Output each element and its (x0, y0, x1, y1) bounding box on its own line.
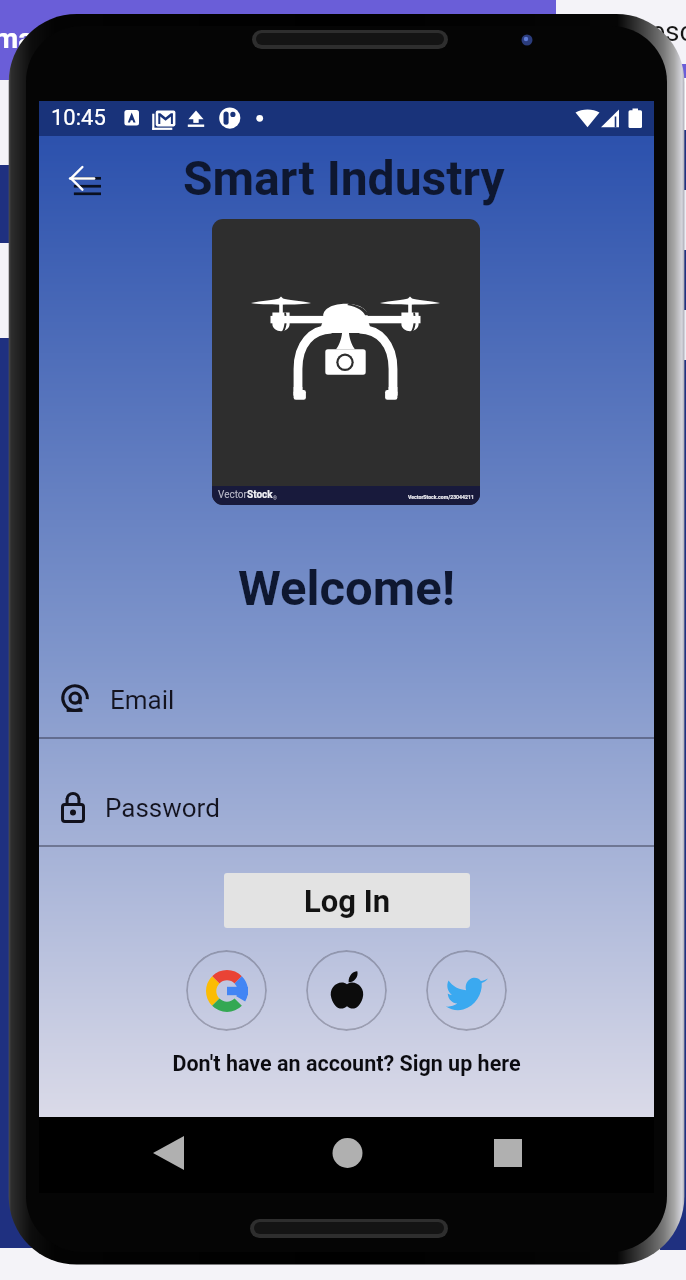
button[interactable]: Sign in with Twitter (426, 950, 507, 1031)
button[interactable]: Sign in with Google (186, 950, 267, 1031)
staticText: Smart Industry (183, 150, 505, 206)
staticText: Welcome! (39, 560, 654, 617)
button[interactable]: Sign in with Apple (306, 950, 387, 1031)
button[interactable]: Open navigation drawer (61, 156, 109, 204)
staticText: Password (105, 793, 220, 823)
button[interactable]: Log In (224, 873, 470, 928)
button[interactable]: Don't have an account? Sign up here (39, 1051, 654, 1076)
staticText: Log In (304, 883, 391, 919)
staticText: resc (641, 15, 686, 48)
button[interactable]: Email (39, 631, 654, 739)
staticText: ® (273, 495, 277, 501)
staticText: Stock (247, 489, 273, 501)
button[interactable]: Password (39, 739, 654, 847)
staticText: VectorStock.com/23044211 (408, 494, 474, 500)
staticText: Vector (218, 489, 247, 501)
staticText: 10:45 (51, 105, 106, 131)
staticText: Email (110, 685, 175, 715)
staticText: mart (0, 22, 54, 55)
